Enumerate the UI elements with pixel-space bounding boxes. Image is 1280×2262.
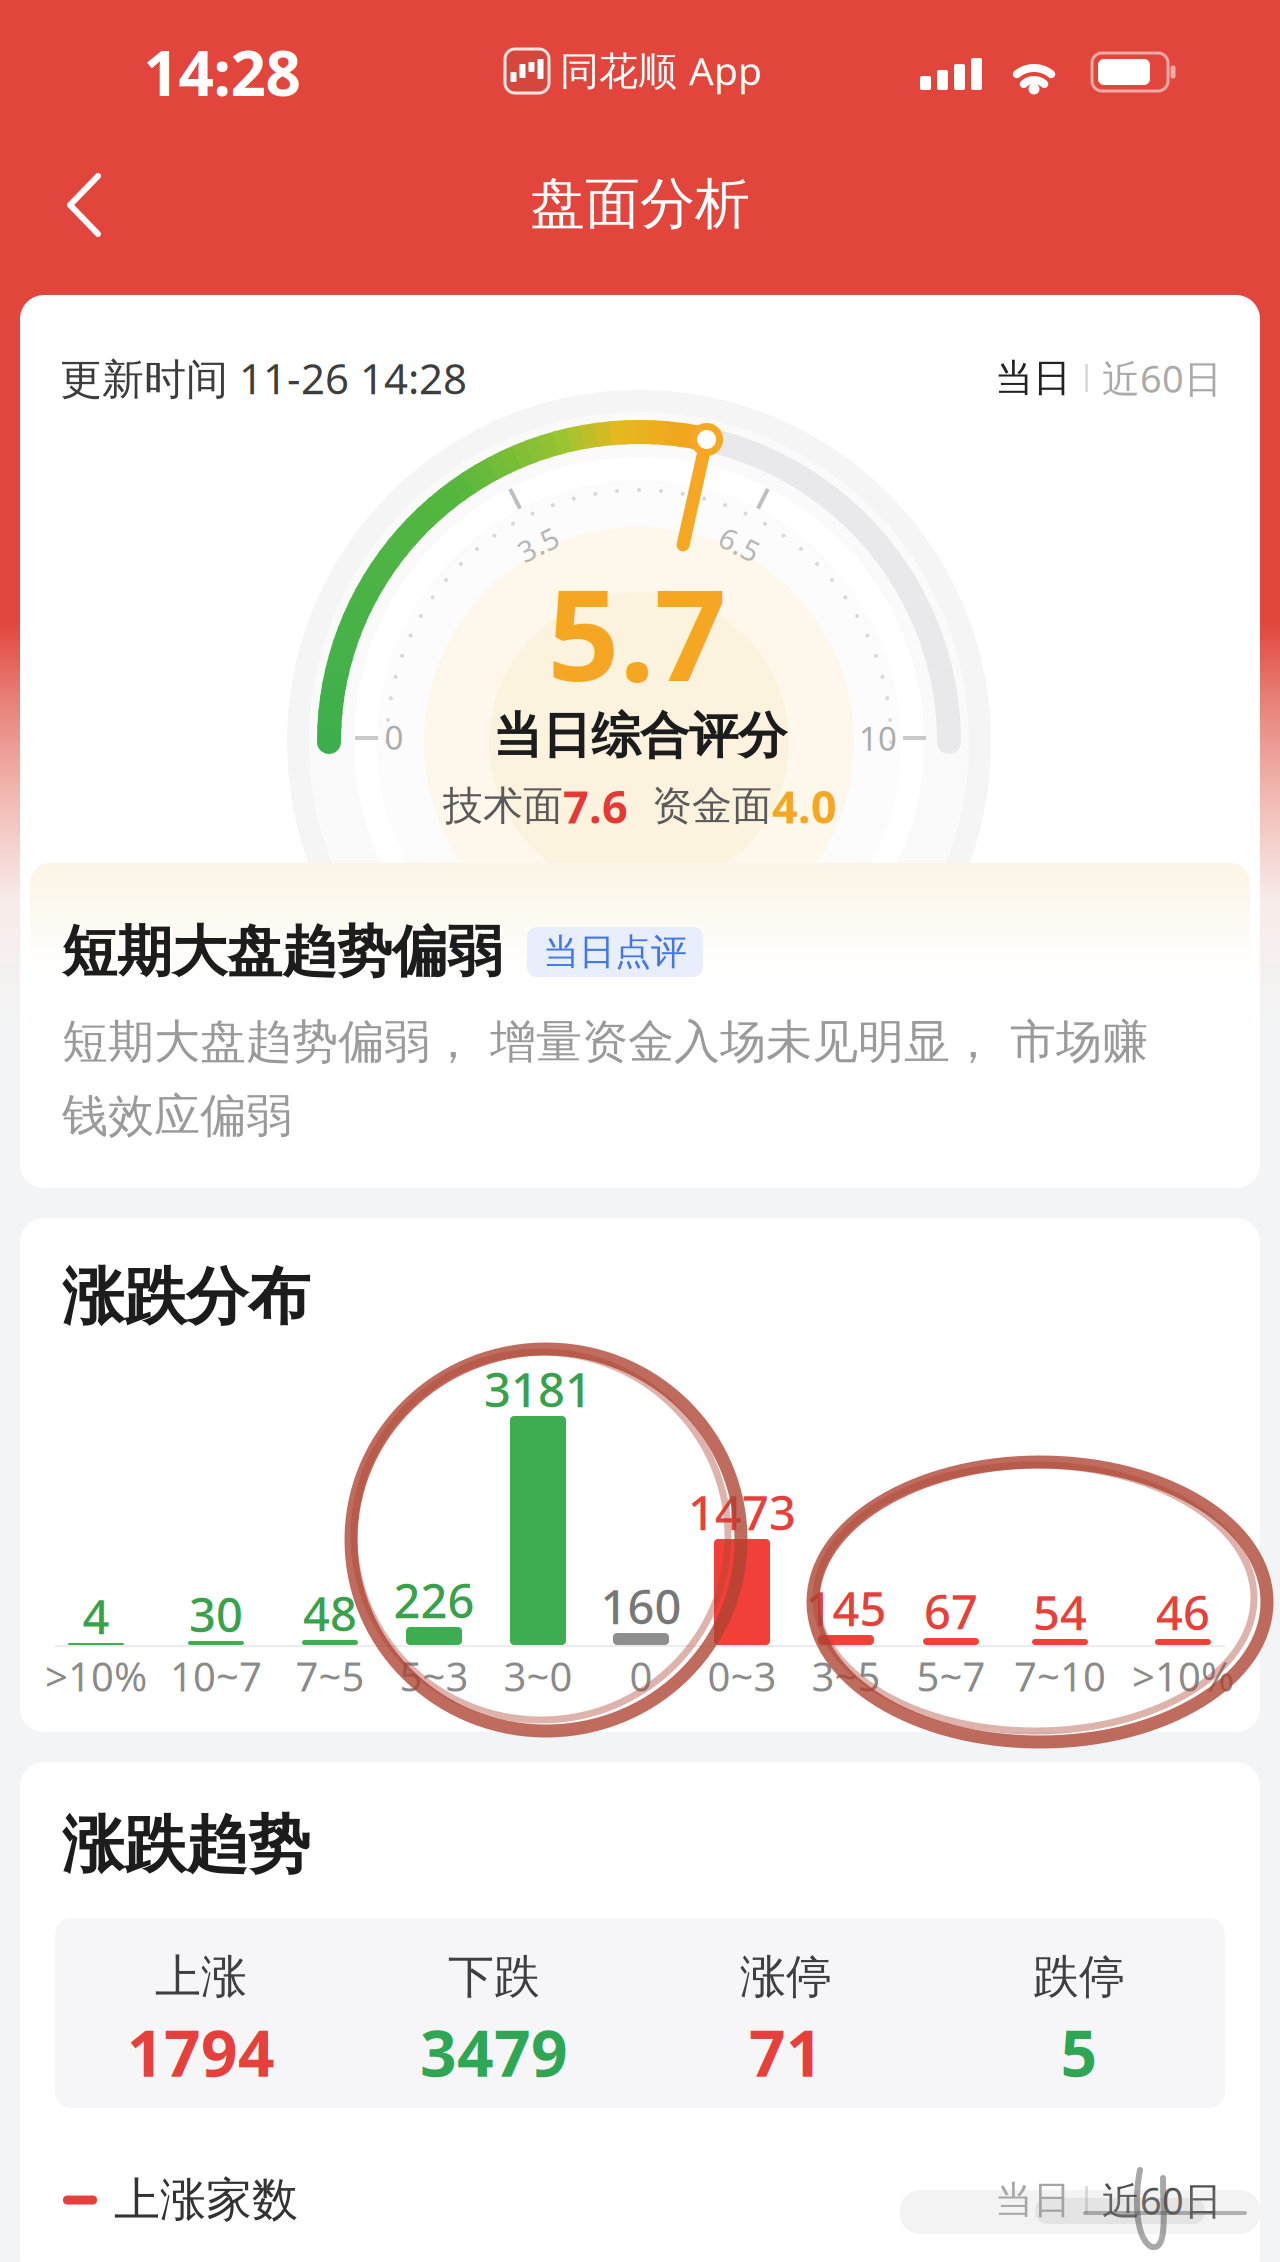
staticText: 7.6 [563,775,628,837]
staticText: 54 [1033,1580,1087,1644]
staticText: 同花顺 App [560,43,762,96]
staticText: 10 [859,715,897,760]
staticText: 当日 [995,354,1071,402]
staticText: >10% [45,1649,147,1703]
staticText: 资金面 [628,781,772,831]
staticText: 上涨 [155,1948,247,2006]
staticText: 3~0 [503,1649,572,1703]
staticText: 3.5 [517,524,559,564]
staticText: 5 [1060,2008,1097,2096]
staticText: 上涨家数 [114,2171,298,2229]
staticText: 当日点评 [543,929,687,975]
staticText: 30 [189,1582,243,1646]
staticText: 71 [749,2008,823,2096]
staticText: 3181 [484,1357,592,1421]
staticText: 短期大盘趋势偏弱， 增量资金入场未见明显， 市场赚 [62,1013,1148,1071]
staticText: 盘面分析 [530,169,750,239]
staticText: 近60日 [1102,2174,1222,2226]
staticText: 跌停 [1033,1948,1125,2006]
button[interactable]: 时间范围 [995,352,1222,404]
staticText: 48 [303,1581,357,1645]
staticText: 更新时间 11-26 14:28 [60,349,467,407]
staticText: 钱效应偏弱 [62,1087,292,1145]
staticText: 近60日 [1102,352,1222,404]
staticText: 短期大盘趋势偏弱 [62,917,502,987]
staticText: 1473 [688,1480,796,1544]
staticText: 3479 [420,2008,568,2096]
staticText: 0~3 [707,1649,776,1703]
staticText: 4 [82,1584,109,1648]
staticText: 3~5 [811,1649,880,1703]
staticText: 1794 [127,2008,275,2096]
staticText: 5~7 [916,1649,985,1703]
staticText: 10~7 [170,1649,262,1703]
staticText: 160 [600,1574,681,1638]
staticText: 5.7 [547,546,726,718]
staticText: 当日综合评分 [493,705,787,767]
staticText: 67 [924,1579,978,1643]
staticText: 6.5 [719,524,761,564]
staticText: 0 [629,1649,652,1703]
staticText: 涨停 [740,1948,832,2006]
staticText: 0 [384,714,403,759]
staticText: 下跌 [448,1948,540,2006]
staticText: 7~10 [1014,1649,1106,1703]
staticText: 226 [393,1568,474,1632]
staticText: 145 [805,1576,886,1640]
staticText: 当日 [995,2176,1071,2224]
staticText: 7~5 [295,1649,364,1703]
staticText: 14:28 [143,30,300,114]
staticText: 技术面 [443,781,563,831]
staticText: 4.0 [772,775,837,837]
staticText: 5~3 [399,1649,468,1703]
button[interactable]: 当日点评 [527,927,703,977]
staticText: >10% [1132,1649,1234,1703]
staticText: 涨跌分布 [62,1258,310,1336]
button[interactable]: Back [64,170,104,240]
button[interactable]: 时间范围 [995,2174,1222,2226]
staticText: 46 [1156,1580,1210,1644]
staticText: 涨跌趋势 [62,1806,310,1884]
